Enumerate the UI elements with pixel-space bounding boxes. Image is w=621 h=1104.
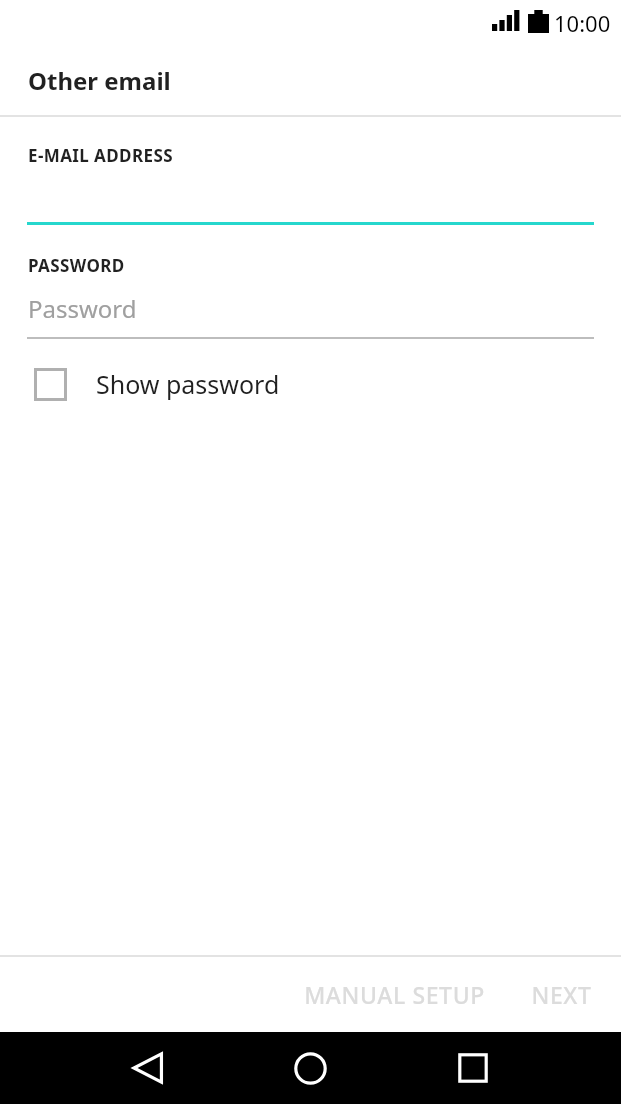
staticText: Other email	[28, 64, 171, 97]
button[interactable]	[0, 167, 621, 225]
staticText: NEXT	[531, 979, 592, 1010]
staticText: Show password	[96, 367, 280, 401]
staticText: E-MAIL ADDRESS	[28, 144, 173, 167]
staticText: MANUAL SETUP	[304, 979, 485, 1010]
staticText: 10:00	[554, 8, 611, 38]
button[interactable]: Password	[0, 277, 621, 339]
button[interactable]: Recents	[443, 1038, 503, 1098]
button[interactable]: MANUAL SETUP	[288, 967, 501, 1022]
staticText: PASSWORD	[28, 254, 125, 277]
button[interactable]: Show password	[0, 357, 621, 411]
staticText: Password	[28, 292, 137, 325]
button[interactable]: NEXT	[515, 967, 608, 1022]
button[interactable]: Back	[118, 1038, 178, 1098]
button[interactable]: Home	[280, 1038, 340, 1098]
